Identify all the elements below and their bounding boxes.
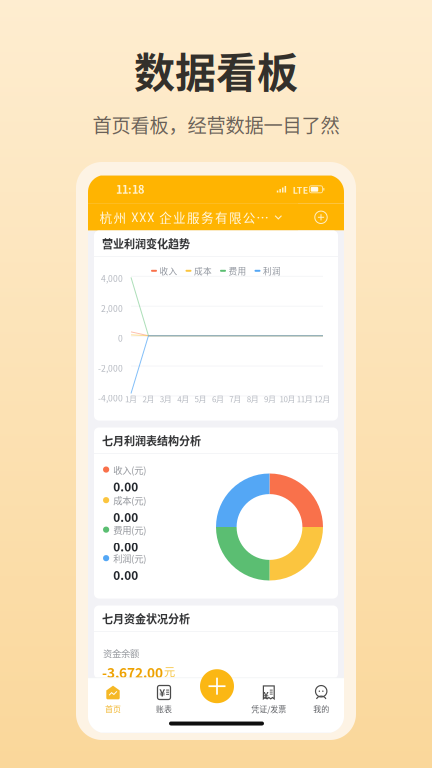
staticText: 0.00 [113,566,138,583]
staticText: 费用 [228,264,246,277]
staticText: 首页看板，经营数据一目了然 [92,110,339,138]
staticText: 元 [164,663,175,679]
staticText: 收入(元) [113,463,146,476]
staticText: ¥ [159,685,165,700]
staticText: 数据看板 [134,40,298,99]
staticText: 利润 [263,264,281,277]
staticText: 资金余额 [103,646,139,660]
staticText: 7月 [229,393,241,405]
staticText: 收入 [159,264,177,277]
staticText: -3,672.00 [102,662,163,682]
button[interactable]: 新建 [198,667,236,705]
staticText: 0 [118,332,123,344]
staticText: ¥ [263,688,269,701]
staticText: 2,000 [101,302,123,314]
staticText: 成本(元) [113,493,146,507]
staticText: 费用(元) [113,523,146,536]
button[interactable]: 添加 [312,208,330,226]
staticText: 12月 [314,393,330,405]
staticText: 1月 [125,393,137,405]
staticText: 凭证/发票 [251,703,286,715]
staticText: 4月 [177,393,189,405]
staticText: 8月 [247,393,259,405]
staticText: 0.00 [113,478,138,495]
staticText: 2月 [142,393,154,405]
staticText: 营业利润变化趋势 [102,235,190,251]
button[interactable]: ¥ [137,680,191,714]
button[interactable]: ¥ [242,680,296,714]
staticText: 6月 [212,393,224,405]
staticText: 杭州 XXX 企业服务有限公司 [99,208,270,226]
staticText: -4,000 [98,392,123,404]
staticText: 我的 [313,703,329,715]
staticText: 4,000 [101,272,123,284]
staticText: 利润(元) [113,551,146,565]
staticText: 11:18 [116,181,144,197]
staticText: 0.00 [113,508,138,525]
button[interactable]: 杭州 XXX 企业服务有限公司 [88,203,298,230]
staticText: 0.00 [113,538,138,555]
staticText: 七月资金状况分析 [102,610,190,626]
staticText: 成本 [194,264,212,277]
staticText: 9月 [264,393,276,405]
staticText: 10月 [279,393,295,405]
staticText: 5月 [194,393,206,405]
staticText: 账表 [156,703,172,715]
staticText: 首页 [105,703,121,715]
staticText: 11月 [297,393,313,405]
staticText: 3月 [160,393,172,405]
staticText: LTE [293,184,308,196]
button[interactable]: 首页 [86,680,140,714]
staticText: 七月利润表结构分析 [102,432,201,448]
staticText: -2,000 [98,362,123,374]
button[interactable]: 我的 [294,680,348,714]
